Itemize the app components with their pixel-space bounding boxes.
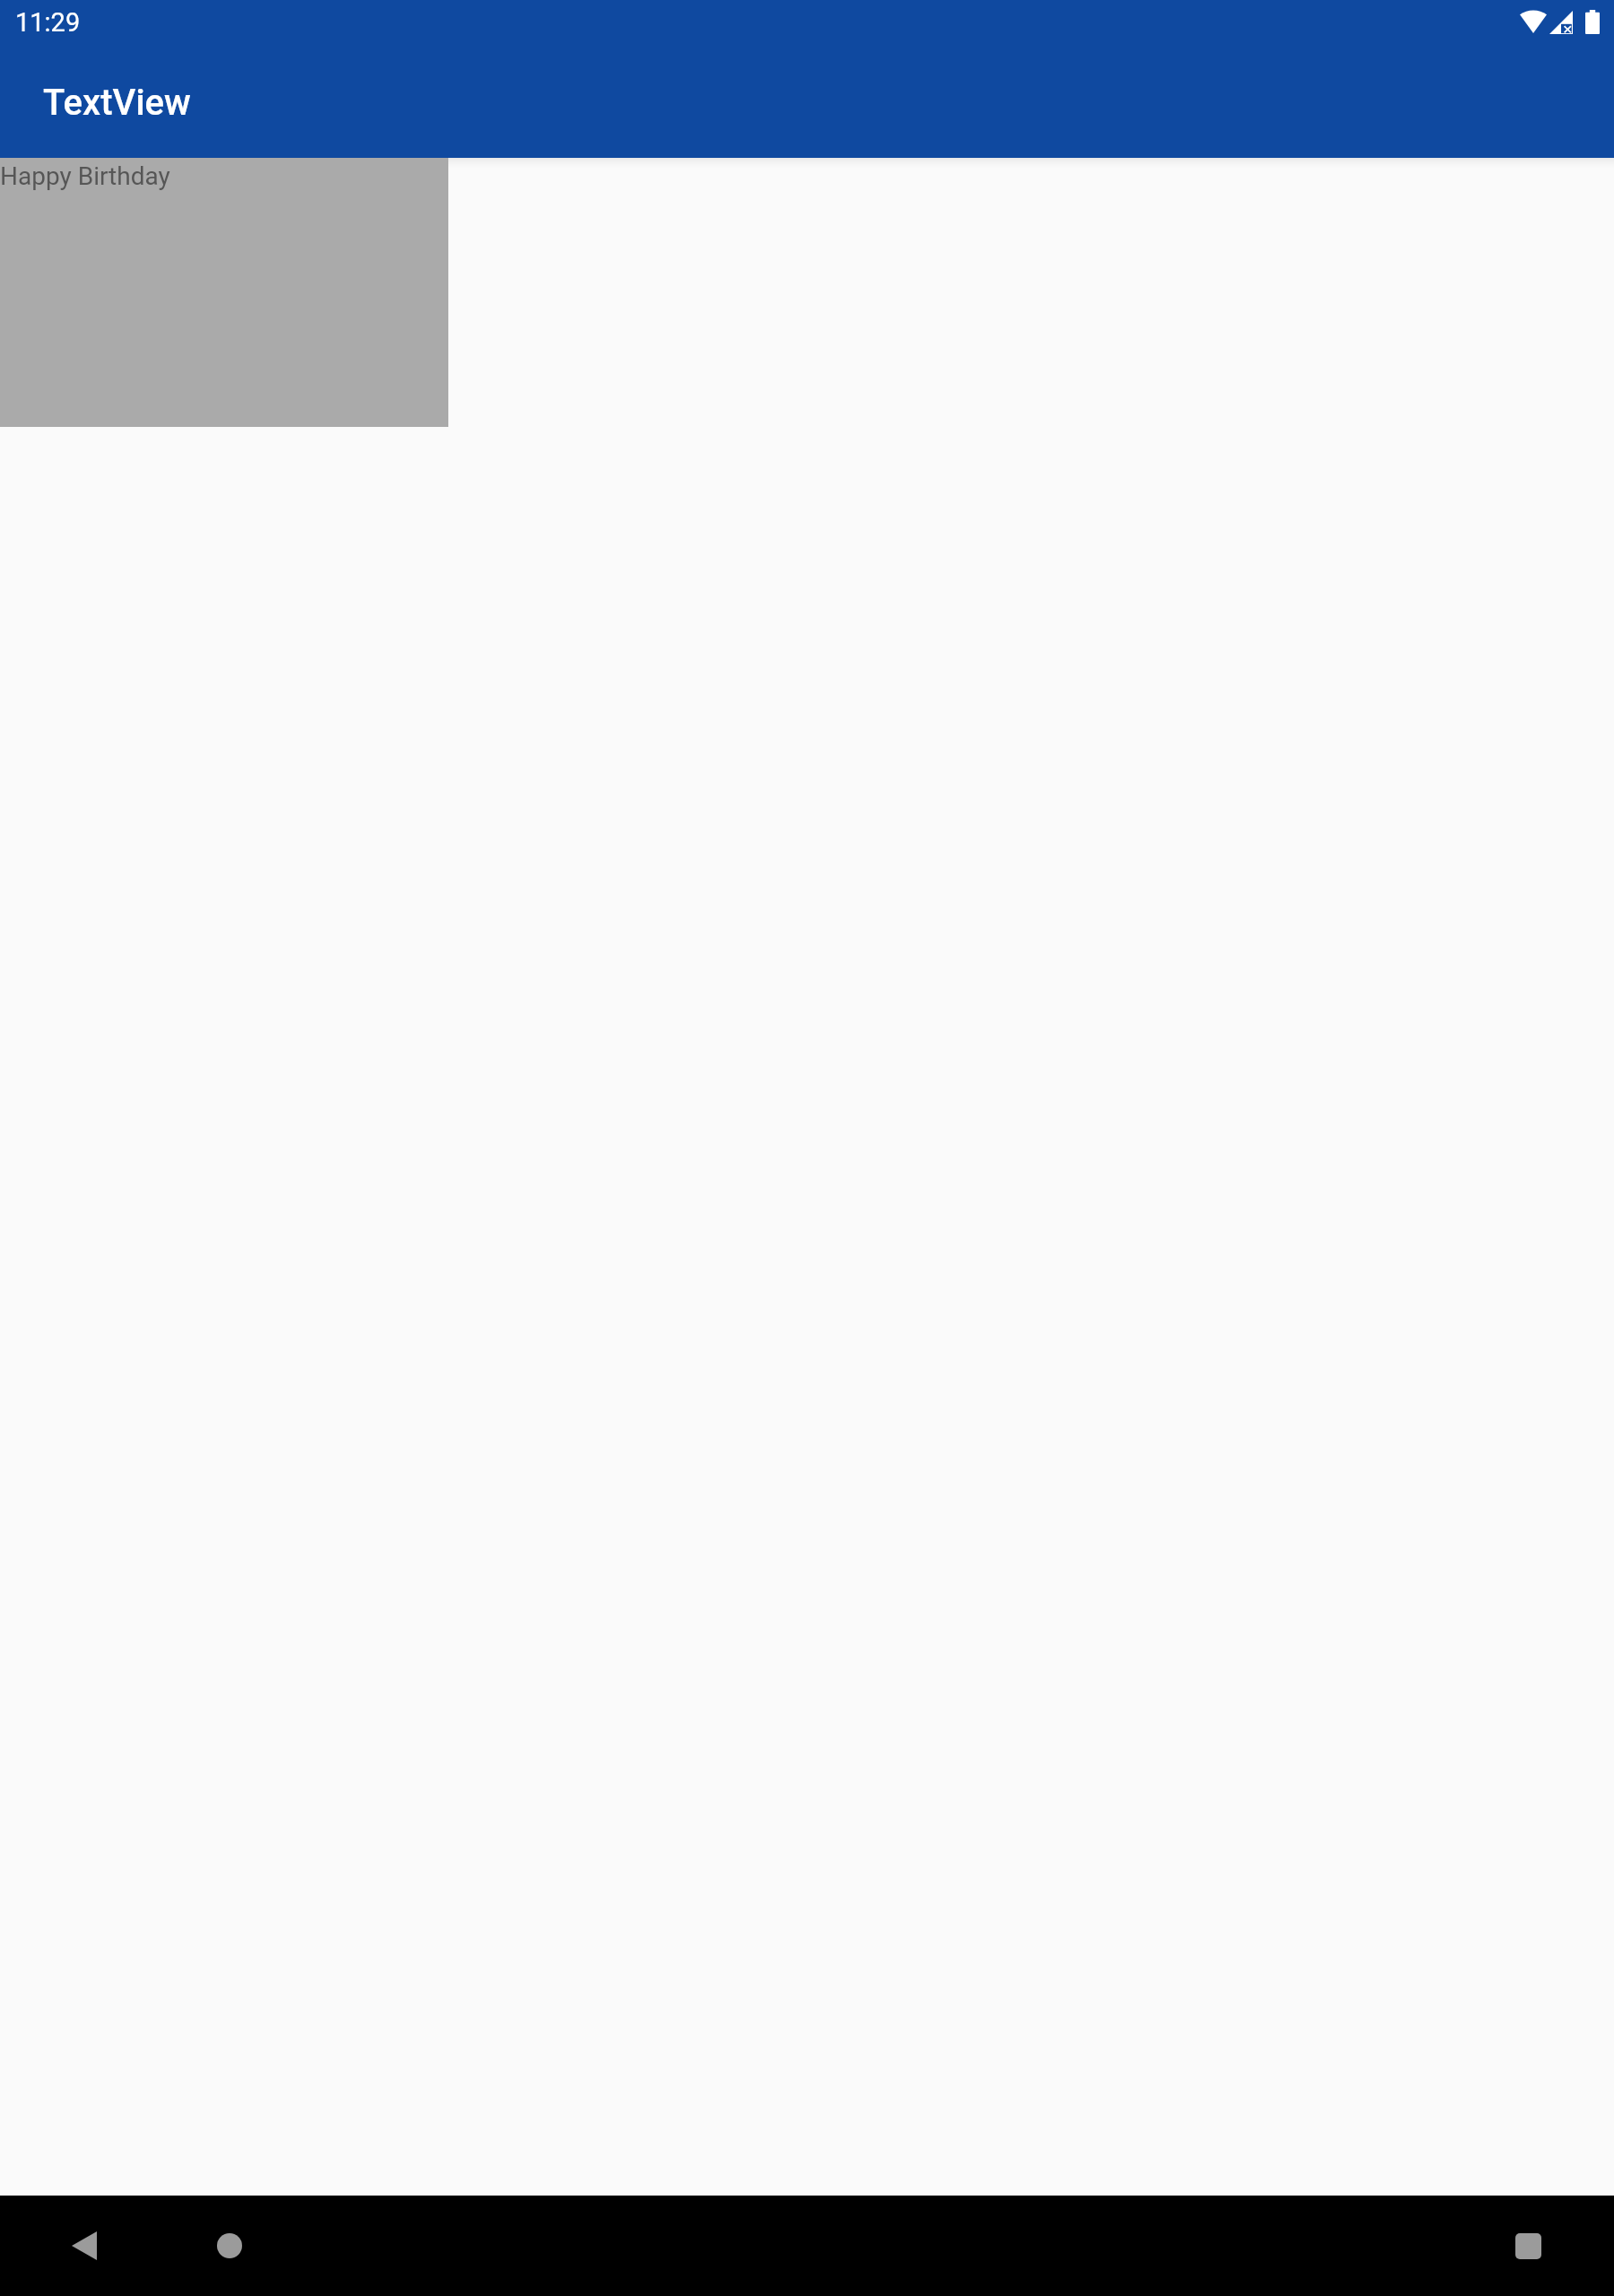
- staticText: TextView: [43, 82, 191, 124]
- staticText: 11:29: [15, 7, 81, 38]
- button[interactable]: Back: [48, 2210, 120, 2282]
- button[interactable]: Home: [194, 2210, 265, 2282]
- button[interactable]: Recent apps: [1492, 2210, 1564, 2282]
- staticText: Happy Birthday: [0, 161, 170, 191]
